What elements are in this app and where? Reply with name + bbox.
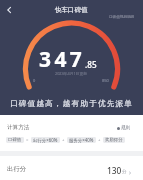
staticText: + [62,137,65,143]
staticText: 0 [33,78,36,83]
staticText: 347 [39,45,86,74]
staticText: 服务分×40% [69,137,94,143]
staticText: 出行分 [7,165,27,173]
staticText: 出行分×60% [33,137,58,143]
staticText: 口碑值越高，越有助于优先派单 [10,99,134,109]
staticText: = [26,137,29,143]
button[interactable]: 计算方法 [0,115,143,133]
staticText: 快车口碑值 [55,6,88,14]
button[interactable]: 口碑值规则说明 [108,14,136,21]
button[interactable]: 返回 [1,2,17,18]
staticText: 850 [102,78,109,83]
staticText: 口碑值 [8,137,22,143]
staticText: .85 [85,59,97,70]
staticText: 计算方法 [7,124,30,131]
staticText: + [98,137,101,143]
staticText: 分 [122,169,127,175]
staticText: 130 [107,165,122,176]
staticText: 奖励得分 [105,137,123,143]
staticText: 2023年4月1日更新 [55,71,88,76]
staticText: 口碑值规则说明 [109,15,135,20]
button[interactable]: 出行分 [0,156,143,180]
staticText: 规则 [121,125,131,131]
